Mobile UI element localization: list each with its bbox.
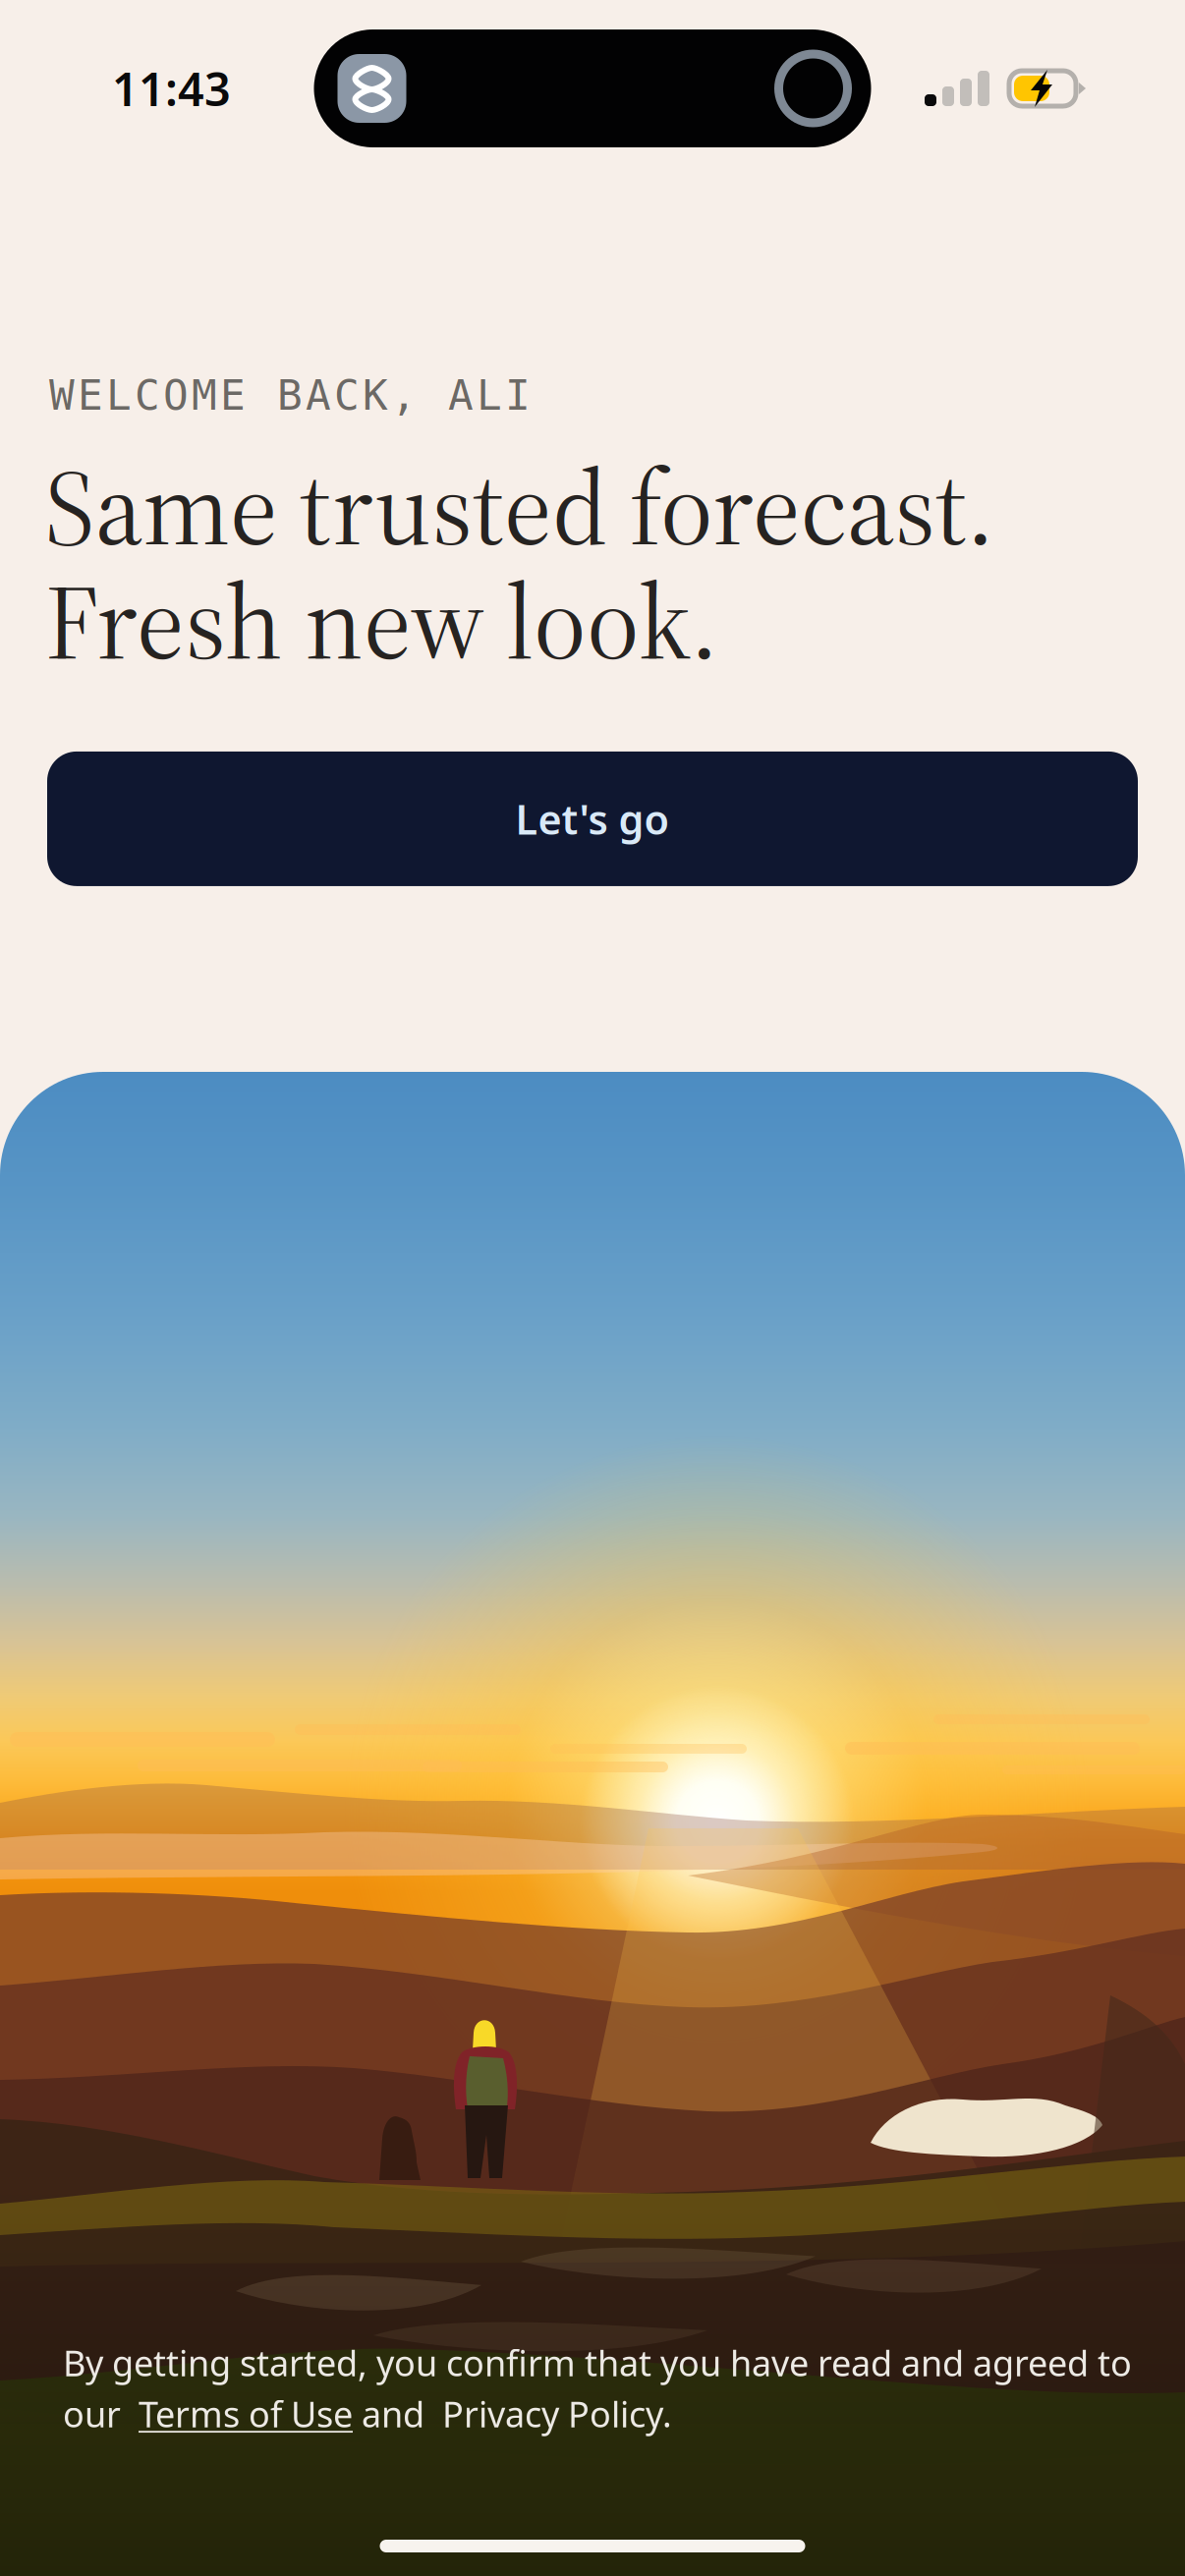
button[interactable]: Privacy Policy. (442, 2390, 672, 2437)
staticText: Same trusted forecast. (45, 436, 994, 579)
staticText: By getting started, you confirm that you… (63, 2339, 1132, 2386)
staticText: 11:43 (112, 58, 231, 119)
button[interactable]: Terms of Use (139, 2390, 353, 2437)
staticText: Terms of Use (139, 2390, 353, 2437)
staticText: our (63, 2390, 139, 2437)
staticText: WELCOME BACK, ALI (49, 371, 531, 419)
staticText: and (353, 2390, 442, 2437)
staticText: Let's go (515, 792, 670, 846)
staticText: Fresh new look. (45, 550, 718, 694)
button[interactable]: Let's go (47, 751, 1138, 886)
staticText: Privacy Policy. (442, 2390, 672, 2437)
